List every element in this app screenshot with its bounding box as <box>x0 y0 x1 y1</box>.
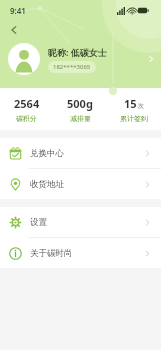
button[interactable]: 昵称: 低碳女士 <box>0 38 161 80</box>
staticText: 收货地址 <box>30 179 64 190</box>
staticText: 减排量 <box>70 114 91 123</box>
button[interactable]: 15 <box>107 96 161 123</box>
staticText: 碳积分 <box>16 114 37 123</box>
staticText: 关于碳时尚 <box>30 248 73 259</box>
button[interactable]: 关于碳时尚 <box>0 238 161 268</box>
staticText: 9:41 <box>10 5 26 16</box>
staticText: 182****3065 <box>53 63 91 71</box>
button[interactable]: 500g <box>53 96 107 123</box>
staticText: 500g <box>67 96 93 111</box>
staticText: 2564 <box>14 96 40 111</box>
button[interactable]: 兑换中心 <box>0 138 161 168</box>
staticText: 设置 <box>30 217 47 228</box>
staticText: 兑换中心 <box>30 148 64 159</box>
button[interactable]: 收货地址 <box>0 169 161 199</box>
staticText: 次 <box>138 102 144 110</box>
button[interactable]: 设置 <box>0 207 161 237</box>
button[interactable]: 2564 <box>0 96 53 123</box>
staticText: 15 <box>124 96 137 111</box>
staticText: 昵称: 低碳女士 <box>48 46 107 58</box>
button[interactable]: 返回 <box>4 20 24 40</box>
staticText: 累计签到 <box>120 114 148 123</box>
